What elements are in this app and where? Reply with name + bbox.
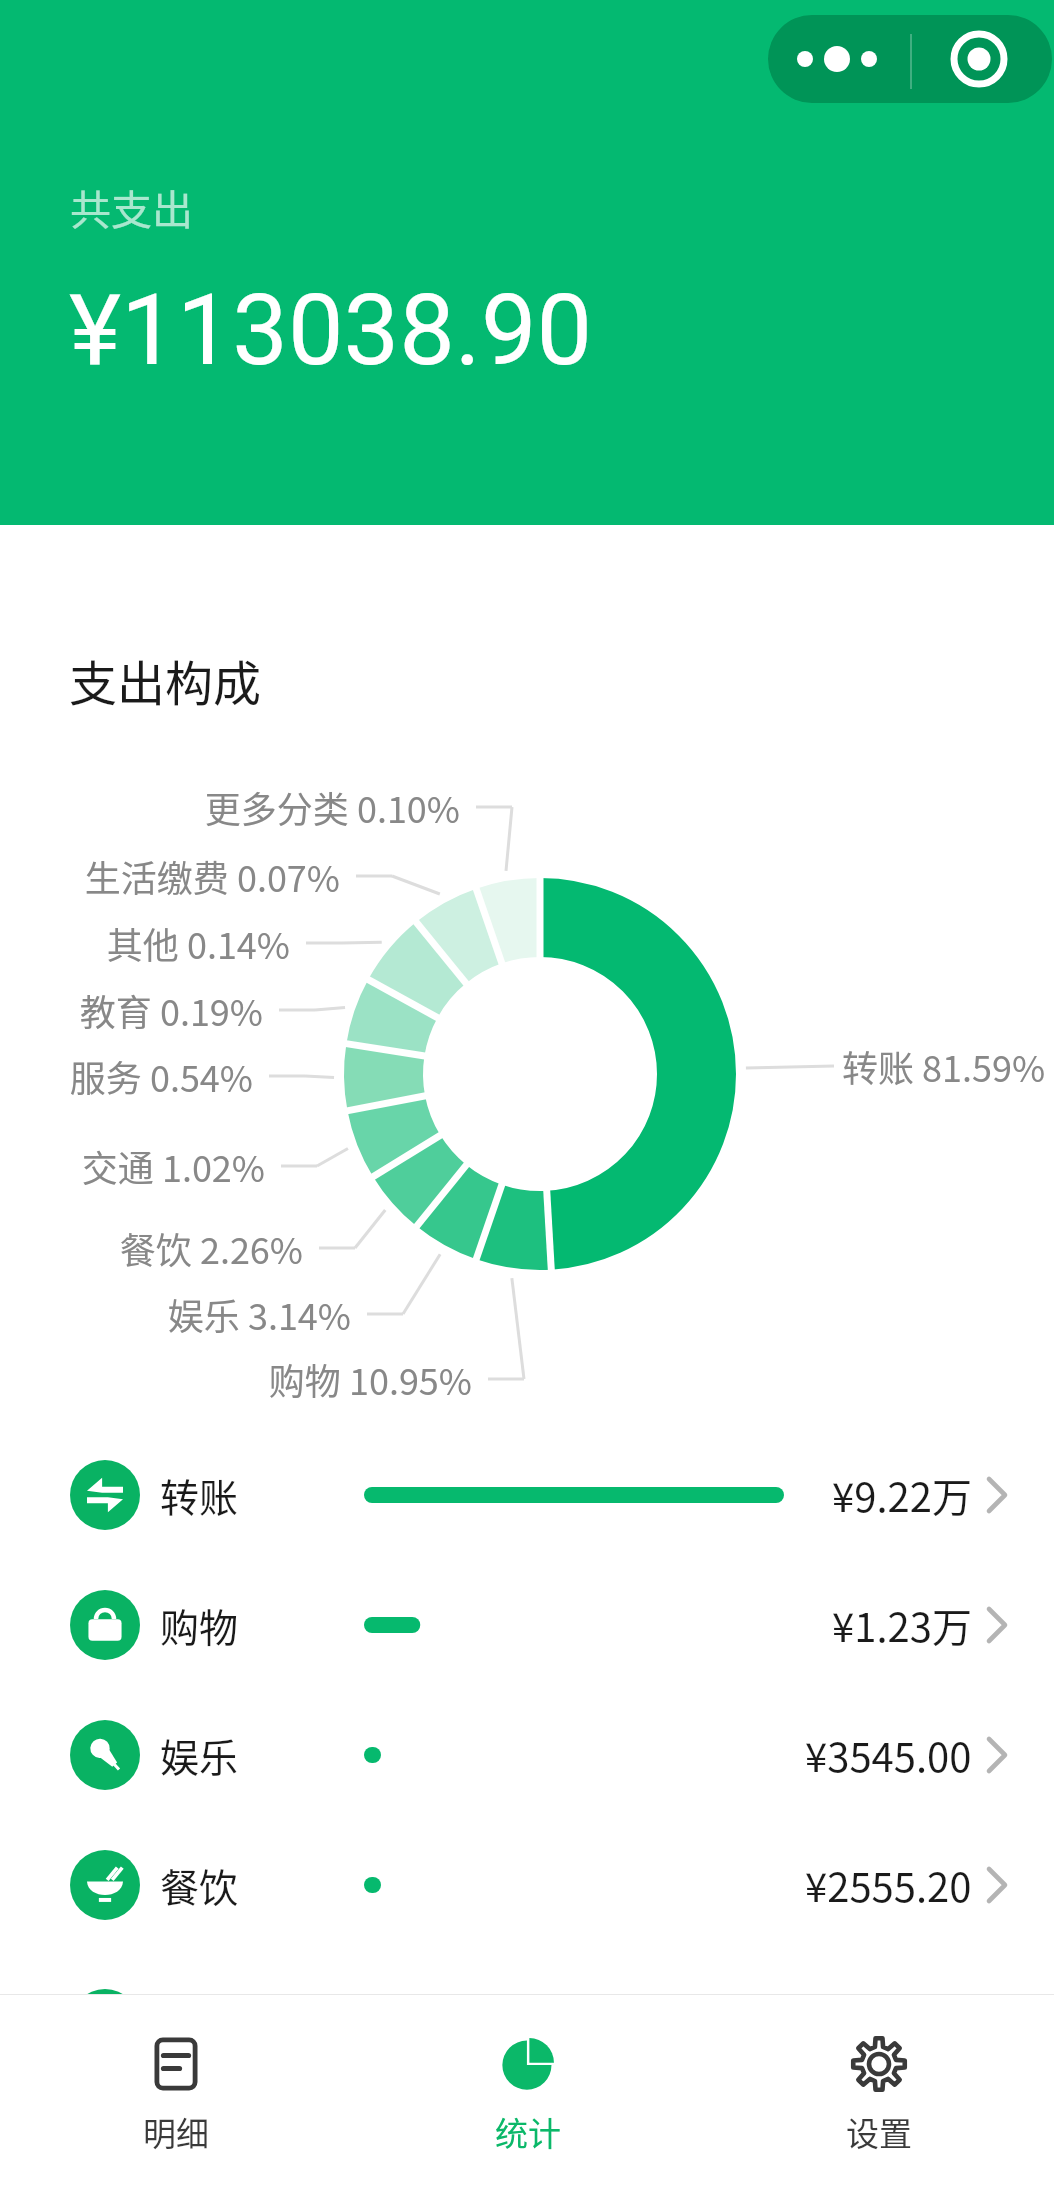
staticText: 服务 0.54% <box>69 1050 253 1102</box>
staticText: 其他 0.14% <box>106 917 290 969</box>
staticText: 设置 <box>846 2108 912 2156</box>
staticText: 共支出 <box>70 177 193 236</box>
staticText: 转账 <box>160 1467 239 1523</box>
staticText: ¥113038.90 <box>69 272 593 388</box>
button[interactable]: 娱乐 <box>0 1690 1054 1820</box>
button[interactable]: 餐饮 <box>0 1820 1054 1950</box>
button[interactable]: More options <box>768 15 906 103</box>
staticText: 生活缴费 0.07% <box>84 850 340 902</box>
staticText: 娱乐 <box>160 1727 239 1783</box>
button[interactable]: Close mini program <box>906 15 1052 103</box>
staticText: 教育 0.19% <box>79 984 263 1036</box>
staticText: 购物 <box>160 1597 239 1653</box>
staticText: 餐饮 2.26% <box>119 1222 303 1274</box>
staticText: 转账 81.59% <box>842 1040 1046 1092</box>
staticText: 更多分类 0.10% <box>204 781 460 833</box>
staticText: ¥2555.20 <box>805 1856 972 1914</box>
staticText: ¥1.23万 <box>832 1596 972 1654</box>
staticText: ¥3545.00 <box>805 1726 972 1784</box>
button[interactable]: 转账 <box>0 1430 1054 1560</box>
staticText: 娱乐 3.14% <box>167 1288 351 1340</box>
staticText: 明细 <box>143 2108 209 2156</box>
staticText: 交通 1.02% <box>81 1140 265 1192</box>
staticText: 餐饮 <box>160 1857 239 1913</box>
button[interactable]: 统计 <box>352 1995 703 2197</box>
button[interactable]: 购物 <box>0 1560 1054 1690</box>
button[interactable]: 明细 <box>0 1995 352 2197</box>
staticText: ¥9.22万 <box>832 1466 972 1524</box>
button[interactable]: 设置 <box>703 1995 1054 2197</box>
staticText: 统计 <box>495 2108 561 2156</box>
staticText: 支出构成 <box>69 645 262 715</box>
staticText: 购物 10.95% <box>268 1353 472 1405</box>
